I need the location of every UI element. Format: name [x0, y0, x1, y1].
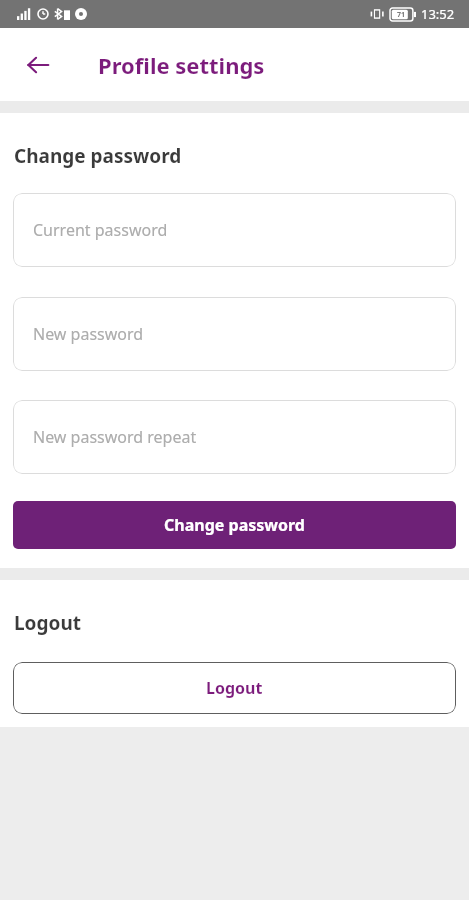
staticText: New password [33, 323, 144, 345]
staticText: Current password [33, 219, 168, 241]
button[interactable]: Back [16, 43, 60, 87]
button[interactable]: Change password [13, 501, 456, 549]
staticText: Change password [14, 143, 182, 169]
staticText: 71 [397, 10, 406, 20]
staticText: Logout [206, 677, 263, 699]
button[interactable]: Current password [13, 193, 456, 267]
staticText: 13:52 [421, 5, 455, 23]
button[interactable]: Logout [13, 662, 456, 714]
staticText: Change password [164, 514, 305, 536]
staticText: New password repeat [33, 426, 197, 448]
button[interactable]: New password [13, 297, 456, 371]
staticText: Logout [14, 610, 81, 636]
button[interactable]: New password repeat [13, 400, 456, 474]
staticText: Profile settings [98, 50, 265, 80]
